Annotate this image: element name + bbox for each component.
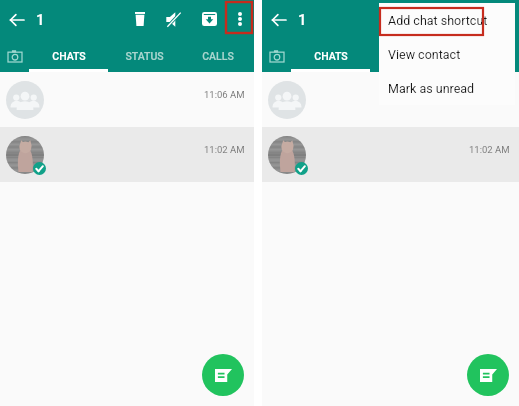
staticText: 11:06 AM: [204, 89, 245, 100]
button[interactable]: New chat: [202, 354, 244, 396]
button[interactable]: Archive: [461, 9, 481, 29]
staticText: 1: [298, 11, 307, 29]
button[interactable]: Back: [8, 11, 26, 29]
button[interactable]: 11:02 AM: [262, 127, 519, 182]
button[interactable]: New chat: [467, 354, 509, 396]
button[interactable]: STATUS: [370, 40, 443, 72]
button[interactable]: Archive: [199, 9, 219, 29]
button[interactable]: 11:06 AM: [262, 72, 519, 127]
button[interactable]: CALLS: [443, 40, 516, 72]
button[interactable]: Camera: [262, 40, 292, 72]
button[interactable]: Mute: [425, 9, 445, 29]
button[interactable]: Back: [270, 11, 288, 29]
button[interactable]: STATUS: [108, 40, 181, 72]
staticText: 11:06 AM: [469, 89, 510, 100]
button[interactable]: Mark as unread: [379, 71, 515, 105]
staticText: 11:02 AM: [204, 144, 245, 155]
staticText: STATUS: [387, 50, 426, 62]
button[interactable]: CHATS: [30, 40, 108, 72]
staticText: CALLS: [202, 50, 234, 62]
button[interactable]: CHATS: [292, 40, 370, 72]
button[interactable]: Add chat shortcut: [379, 3, 515, 37]
button[interactable]: More options: [231, 8, 249, 30]
staticText: Mark as unread: [388, 81, 475, 96]
button[interactable]: View contact: [379, 37, 515, 71]
button[interactable]: Delete: [392, 9, 412, 29]
staticText: Add chat shortcut: [388, 13, 488, 28]
button[interactable]: Mute: [163, 9, 183, 29]
staticText: View contact: [388, 47, 461, 62]
button[interactable]: CALLS: [181, 40, 254, 72]
staticText: STATUS: [125, 50, 164, 62]
button[interactable]: Delete: [130, 9, 150, 29]
staticText: 1: [36, 11, 45, 29]
button[interactable]: Camera: [0, 40, 30, 72]
staticText: CHATS: [314, 50, 348, 62]
button[interactable]: 11:02 AM: [0, 127, 254, 182]
staticText: 11:02 AM: [469, 144, 510, 155]
button[interactable]: 11:06 AM: [0, 72, 254, 127]
staticText: CHATS: [52, 50, 86, 62]
